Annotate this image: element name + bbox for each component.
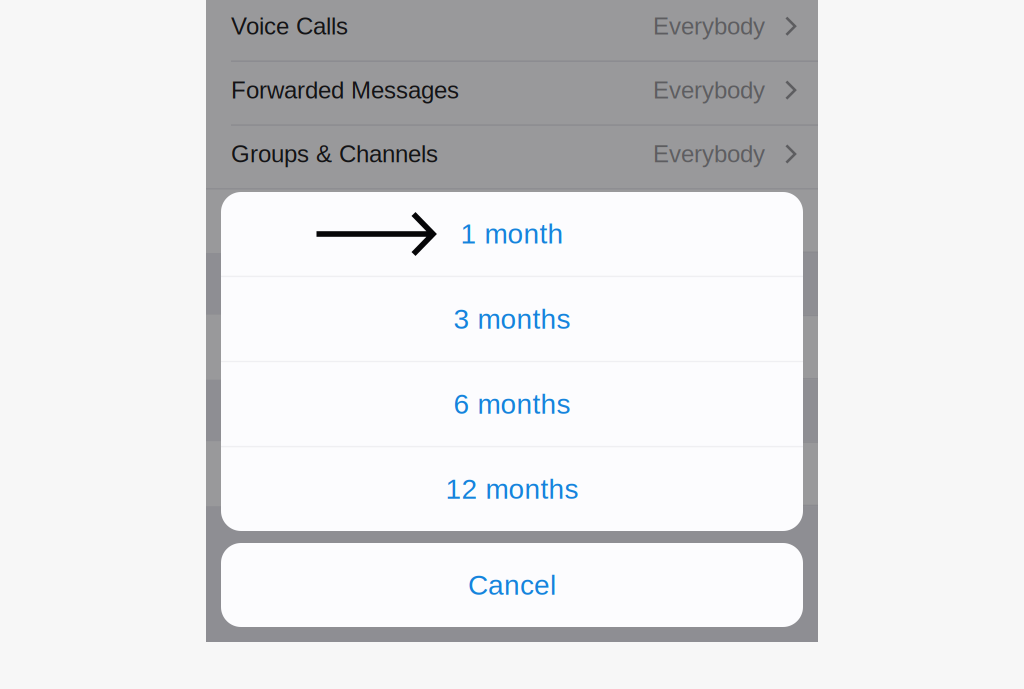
button[interactable]: 12 months [221, 447, 803, 531]
staticText: Everybody [653, 13, 765, 40]
staticText: 12 months [445, 473, 578, 505]
staticText: 3 months [453, 303, 570, 335]
button[interactable]: 1 month [221, 192, 803, 276]
staticText: Forwarded Messages [231, 77, 459, 103]
button[interactable]: Groups & Channels [206, 126, 818, 188]
button[interactable]: 3 months [221, 277, 803, 361]
staticText: Everybody [653, 141, 765, 167]
button[interactable]: Cancel [221, 543, 803, 627]
button[interactable]: 6 months [221, 362, 803, 446]
staticText: Voice Calls [231, 13, 348, 40]
button[interactable]: Forwarded Messages [206, 62, 818, 124]
staticText: Groups & Channels [231, 141, 438, 167]
staticText: 6 months [453, 388, 570, 420]
staticText: Everybody [653, 77, 765, 103]
staticText: 1 month [460, 218, 563, 249]
button[interactable]: Voice Calls [206, 0, 818, 60]
staticText: Cancel [468, 569, 556, 601]
